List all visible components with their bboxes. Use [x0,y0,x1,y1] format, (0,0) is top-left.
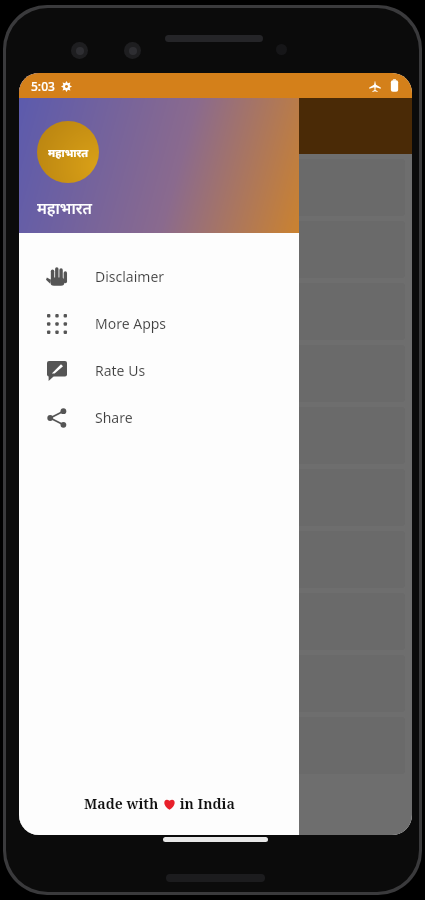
staticText: Rate Us [95,361,146,380]
staticText: महाभारत [48,145,89,160]
button[interactable]: द्रोणाचार्य [26,283,405,340]
button[interactable] [26,593,405,650]
button[interactable]: Rate Us [19,347,299,394]
staticText: Share [95,408,133,427]
staticText: Disclaimer [95,267,165,286]
button[interactable]: Share [19,394,299,441]
button[interactable] [26,655,405,712]
button[interactable]: More Apps [19,300,299,347]
button[interactable] [26,407,405,464]
staticText: Made with [84,794,163,813]
button[interactable] [26,717,405,774]
other: Battery [388,79,401,92]
button[interactable] [26,469,405,526]
button[interactable]: Disclaimer [19,253,299,300]
button[interactable] [26,531,405,588]
staticText: द्रोणाचार्य [40,300,96,323]
button[interactable]: महाभारत की उत्पत्ति [26,159,405,216]
staticText: महाभारत [37,197,92,219]
staticText: 5:03 [31,78,55,94]
button[interactable] [26,345,405,402]
staticText: 5:03 [31,78,55,94]
staticText: More Apps [95,314,167,333]
staticText: in India [176,794,235,813]
other: Airplane mode [369,80,381,92]
other: Settings [61,81,72,92]
button[interactable]: भीष्म प्रतिज्ञा [26,221,405,278]
staticText: महाभारत की उत्पत्ति [40,176,163,199]
other: Settings [61,81,72,92]
